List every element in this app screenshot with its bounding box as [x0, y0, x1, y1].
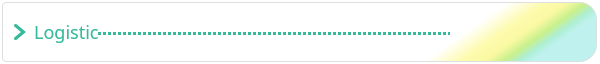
staticText: Logistic [34, 20, 99, 45]
button[interactable]: Logistic [2, 2, 597, 62]
